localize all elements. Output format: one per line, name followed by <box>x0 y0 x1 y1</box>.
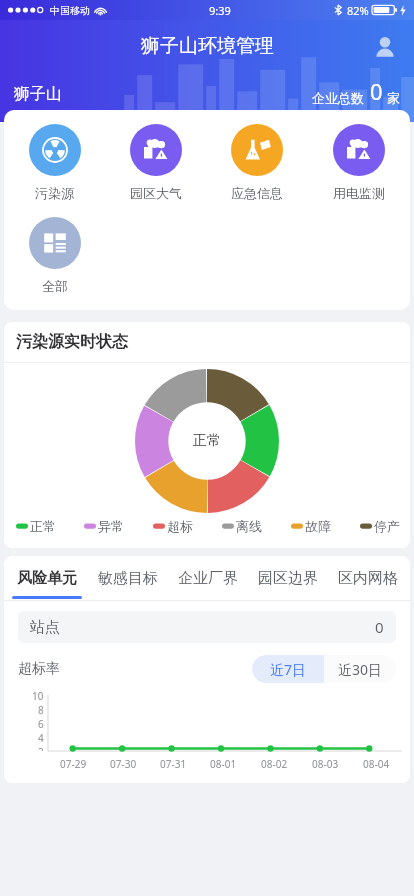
staticText: 全部 <box>42 278 68 294</box>
staticText: 家 <box>387 90 400 106</box>
button[interactable]: User profile <box>370 32 400 62</box>
staticText: 故障 <box>305 518 331 534</box>
staticText: 2 <box>38 745 44 751</box>
button[interactable]: 企业厂界 <box>168 556 248 600</box>
staticText: 园区边界 <box>258 569 318 588</box>
staticText: 停产 <box>374 518 400 534</box>
button[interactable]: 近7日 <box>252 655 324 683</box>
staticText: 8 <box>38 703 44 717</box>
staticText: 超标 <box>167 518 193 534</box>
staticText: 4 <box>38 731 44 745</box>
staticText: 离线 <box>236 518 262 534</box>
button[interactable]: 园区边界 <box>248 556 328 600</box>
staticText: 08-01 <box>210 757 237 771</box>
button[interactable]: 污染源 <box>4 122 105 203</box>
staticText: 10 <box>32 689 44 703</box>
staticText: 区内网格 <box>338 569 398 588</box>
staticText: 狮子山 <box>14 84 62 104</box>
staticText: 正常 <box>193 432 221 450</box>
staticText: 狮子山环境管理 <box>141 34 274 58</box>
staticText: 正常 <box>30 518 56 534</box>
staticText: 07-30 <box>110 757 137 771</box>
staticText: 近30日 <box>338 660 383 679</box>
button[interactable]: 区内网格 <box>328 556 408 600</box>
staticText: 超标率 <box>18 660 60 678</box>
staticText: 园区大气 <box>130 185 182 201</box>
staticText: 08-03 <box>312 757 339 771</box>
button[interactable]: 全部 <box>4 215 105 296</box>
button[interactable]: 园区大气 <box>105 122 206 203</box>
staticText: 异常 <box>98 518 124 534</box>
staticText: 污染源实时状态 <box>16 332 128 352</box>
staticText: 9:39 <box>209 3 231 18</box>
button[interactable]: 应急信息 <box>206 122 308 203</box>
staticText: 污染源 <box>35 185 74 201</box>
button[interactable]: 站点 <box>18 611 396 643</box>
staticText: 应急信息 <box>231 185 283 201</box>
staticText: 近7日 <box>270 660 307 679</box>
staticText: 08-04 <box>363 757 390 771</box>
button[interactable]: 风险单元 <box>6 556 87 600</box>
button[interactable]: 敏感目标 <box>87 556 168 600</box>
staticText: 08-02 <box>261 757 288 771</box>
button[interactable]: 近30日 <box>324 655 396 683</box>
staticText: 6 <box>38 717 44 731</box>
staticText: 0 <box>370 76 383 106</box>
staticText: 07-31 <box>160 757 187 771</box>
staticText: 企业总数 <box>312 90 364 106</box>
staticText: 企业厂界 <box>178 569 238 588</box>
staticText: 07-29 <box>60 757 87 771</box>
staticText: 中国移动 <box>50 4 90 17</box>
staticText: 用电监测 <box>333 185 385 201</box>
staticText: 站点 <box>30 618 60 637</box>
button[interactable]: 用电监测 <box>308 122 410 203</box>
staticText: 敏感目标 <box>98 569 158 588</box>
staticText: 风险单元 <box>17 569 77 588</box>
staticText: 0 <box>375 617 384 637</box>
staticText: 82% <box>347 3 369 18</box>
